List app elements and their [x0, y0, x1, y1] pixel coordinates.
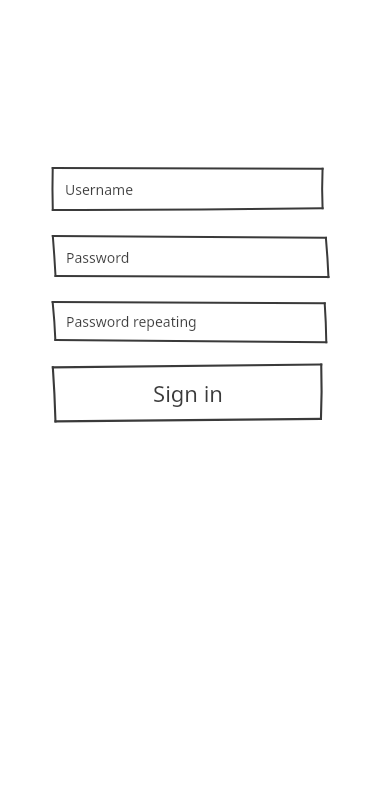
button[interactable]: Username [52, 168, 323, 210]
staticText: Password repeating [66, 312, 197, 331]
button[interactable]: Sign in [53, 365, 322, 421]
button[interactable]: Password [53, 236, 328, 278]
staticText: Username [65, 180, 134, 199]
staticText: Password [66, 248, 130, 267]
staticText: Sign in [153, 378, 223, 408]
button[interactable]: Password repeating [53, 301, 327, 342]
